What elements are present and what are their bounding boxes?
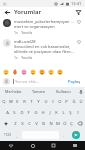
button[interactable]: F xyxy=(26,108,31,117)
button[interactable]: Z xyxy=(12,119,18,128)
staticText: 1s Yanıtla xyxy=(14,30,33,35)
staticText: S xyxy=(13,110,16,116)
button[interactable]: M xyxy=(55,119,60,128)
staticText: W xyxy=(9,99,13,105)
button[interactable]: Home xyxy=(22,141,43,150)
button[interactable]: Emoji xyxy=(21,69,27,75)
button[interactable]: Like xyxy=(76,19,82,25)
staticText: U xyxy=(44,99,48,105)
button[interactable]: G xyxy=(33,108,38,117)
button[interactable]: mustafam_yukselerhampiyon ya emsem xyxy=(0,17,85,37)
staticText: ?123 xyxy=(4,133,11,137)
button[interactable]: E xyxy=(15,97,20,106)
button[interactable]: Shift xyxy=(2,119,10,128)
button[interactable]: Back xyxy=(0,141,22,150)
staticText: mustafam_yukselerhampiyon ya emsem xyxy=(14,19,74,24)
staticText: Ü xyxy=(79,99,83,105)
button[interactable]: Tamam xyxy=(26,87,51,96)
staticText: J xyxy=(49,110,51,116)
staticText: N xyxy=(49,121,53,127)
staticText: I xyxy=(77,110,79,116)
button[interactable]: D xyxy=(19,108,24,117)
button[interactable]: B xyxy=(41,119,46,128)
button[interactable]: Kullanıcı xyxy=(51,87,76,96)
staticText: Ş xyxy=(69,110,72,116)
staticText: I xyxy=(52,99,54,105)
button[interactable]: Emoji xyxy=(30,69,36,75)
button[interactable]: Emoji xyxy=(12,69,18,75)
staticText: Kullanıcı xyxy=(56,89,71,94)
button[interactable]: Back xyxy=(3,8,11,16)
button[interactable]: J xyxy=(47,108,52,117)
staticText: Yorumlar xyxy=(14,8,42,16)
staticText: Paylaş xyxy=(68,79,81,84)
staticText: mert ve organizasyon xyxy=(14,24,55,29)
staticText: A xyxy=(6,110,9,116)
button[interactable]: Ü xyxy=(78,97,83,106)
staticText: O xyxy=(58,99,62,105)
button[interactable]: Ö xyxy=(62,119,67,128)
button[interactable]: Recents xyxy=(43,141,64,150)
staticText: E xyxy=(16,99,19,105)
button[interactable]: Paylaş xyxy=(67,79,82,84)
button[interactable]: A xyxy=(5,108,10,117)
button[interactable]: C xyxy=(27,119,32,128)
button[interactable]: H xyxy=(40,108,45,117)
button[interactable]: Ğ xyxy=(71,97,76,106)
staticText: T xyxy=(30,99,33,105)
staticText: P xyxy=(65,99,68,105)
button[interactable]: Keyboard xyxy=(64,141,85,150)
button[interactable]: Like xyxy=(76,39,82,45)
button[interactable]: , xyxy=(14,130,20,140)
staticText: Sonuclarol en cok basarisizlar, eklinde … xyxy=(14,44,74,54)
button[interactable]: Voice input xyxy=(76,87,85,96)
button[interactable]: P xyxy=(64,97,69,106)
button[interactable]: K xyxy=(54,108,59,117)
button[interactable]: Backspace xyxy=(76,119,83,128)
button[interactable]: Ç xyxy=(69,119,74,128)
staticText: Tamam xyxy=(32,89,46,94)
button[interactable]: U xyxy=(43,97,48,106)
button[interactable]: X xyxy=(20,119,25,128)
staticText: mdLuziel28 xyxy=(14,39,36,44)
button[interactable]: Yorum ekle... xyxy=(15,79,67,84)
staticText: K xyxy=(55,110,58,116)
button[interactable]: N xyxy=(48,119,53,128)
button[interactable]: O xyxy=(57,97,62,106)
button[interactable]: I xyxy=(50,97,55,106)
button[interactable]: Emoji xyxy=(57,69,63,75)
button[interactable]: I xyxy=(75,108,80,117)
staticText: . xyxy=(63,133,65,138)
button[interactable]: V xyxy=(34,119,39,128)
button[interactable]: L xyxy=(61,108,66,117)
button[interactable]: S xyxy=(12,108,17,117)
staticText: X xyxy=(21,121,24,127)
staticText: 13:41 xyxy=(71,1,82,6)
button[interactable]: Q xyxy=(2,97,6,106)
staticText: G xyxy=(34,110,38,116)
button[interactable]: R xyxy=(22,97,27,106)
staticText: D xyxy=(20,110,24,116)
staticText: R xyxy=(23,99,26,105)
button[interactable]: mdLuziel28 xyxy=(0,37,85,62)
staticText: Y xyxy=(37,99,40,105)
button[interactable]: T xyxy=(29,97,34,106)
button[interactable]: Send xyxy=(72,131,80,139)
button[interactable]: Emoji xyxy=(48,69,54,75)
staticText: C xyxy=(28,121,31,127)
staticText: , xyxy=(16,133,18,138)
button[interactable]: Emoji xyxy=(3,69,9,75)
button[interactable]: . xyxy=(61,130,67,140)
staticText: Ç xyxy=(70,121,73,127)
staticText: V xyxy=(35,121,38,127)
button[interactable]: Emoji xyxy=(39,69,45,75)
button[interactable]: Merhaba xyxy=(0,87,26,96)
button[interactable]: Filter xyxy=(74,8,82,16)
button[interactable]: W xyxy=(8,97,13,106)
staticText: F xyxy=(27,110,30,116)
staticText: Yorum ekle... xyxy=(15,79,40,84)
button[interactable]: ?123 xyxy=(2,130,12,140)
button[interactable]: Ş xyxy=(68,108,73,117)
button[interactable]: Y xyxy=(36,97,41,106)
